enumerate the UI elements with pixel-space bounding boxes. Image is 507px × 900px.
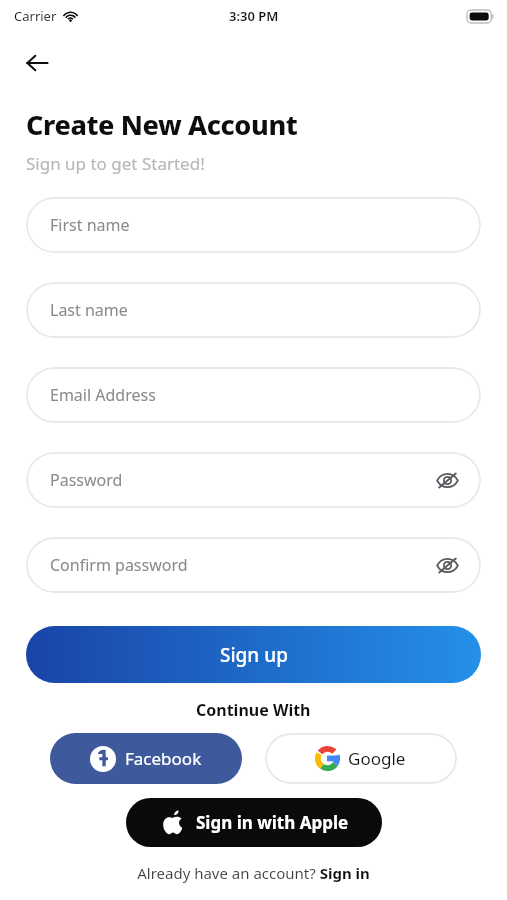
button[interactable]: Last name xyxy=(26,282,481,338)
staticText: Already have an account? Sign in xyxy=(137,863,370,883)
button[interactable]: Already have an account? Sign in xyxy=(0,863,507,883)
staticText: Email Address xyxy=(50,384,156,406)
button[interactable]: Sign in with Apple xyxy=(126,798,382,847)
staticText: Create New Account xyxy=(26,106,298,143)
staticText: 3:30 PM xyxy=(229,7,279,25)
button[interactable]: Google xyxy=(265,733,457,784)
staticText: Sign up xyxy=(220,642,288,668)
staticText: Last name xyxy=(50,299,128,321)
button[interactable]: Password xyxy=(26,452,481,508)
button[interactable]: First name xyxy=(26,197,481,253)
button[interactable]: Sign up xyxy=(26,626,481,683)
staticText: Google xyxy=(348,747,406,770)
staticText: Sign in with Apple xyxy=(196,811,349,834)
staticText: Password xyxy=(50,469,123,491)
button[interactable]: Facebook xyxy=(50,733,242,784)
staticText: Confirm password xyxy=(50,554,188,576)
button[interactable]: Toggle password visibility xyxy=(431,464,463,496)
staticText: First name xyxy=(50,214,130,236)
staticText: Carrier xyxy=(14,7,57,25)
button[interactable]: Email Address xyxy=(26,367,481,423)
button[interactable]: Back xyxy=(14,40,60,86)
button[interactable]: Toggle password visibility xyxy=(431,549,463,581)
staticText: Sign up to get Started! xyxy=(26,152,205,175)
button[interactable]: Confirm password xyxy=(26,537,481,593)
staticText: Continue With xyxy=(196,699,311,721)
staticText: Facebook xyxy=(125,747,202,770)
